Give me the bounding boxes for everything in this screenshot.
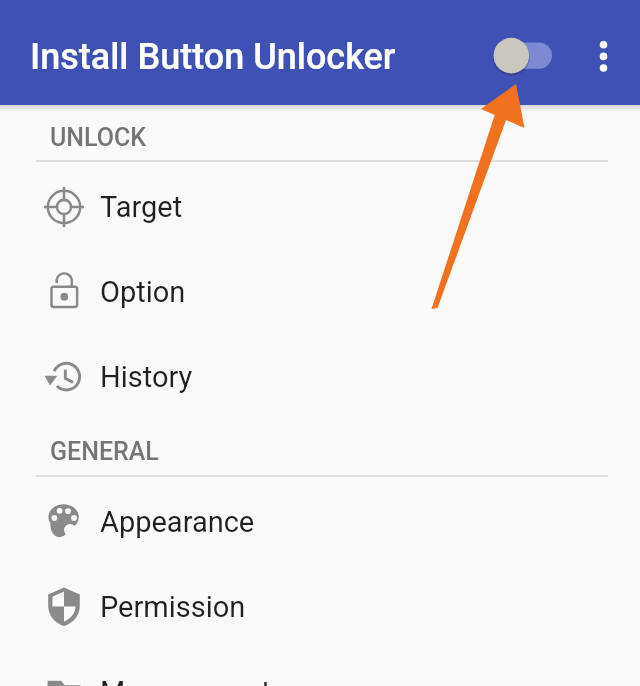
staticText: GENERAL bbox=[50, 437, 159, 466]
staticText: Management bbox=[100, 675, 271, 686]
button[interactable]: Target bbox=[0, 164, 640, 249]
button[interactable]: More options bbox=[579, 32, 627, 80]
button[interactable]: History bbox=[0, 334, 640, 419]
staticText: History bbox=[100, 360, 193, 394]
staticText: Install Button Unlocker bbox=[30, 36, 396, 78]
button[interactable]: Option bbox=[0, 249, 640, 334]
button[interactable]: Enable unlocker bbox=[484, 28, 564, 84]
staticText: Appearance bbox=[100, 505, 255, 539]
button[interactable]: Management bbox=[0, 649, 640, 686]
staticText: UNLOCK bbox=[50, 123, 147, 152]
staticText: Permission bbox=[100, 590, 246, 624]
button[interactable]: Appearance bbox=[0, 479, 640, 564]
staticText: Target bbox=[100, 190, 183, 224]
staticText: Option bbox=[100, 275, 186, 309]
button[interactable]: Permission bbox=[0, 564, 640, 649]
